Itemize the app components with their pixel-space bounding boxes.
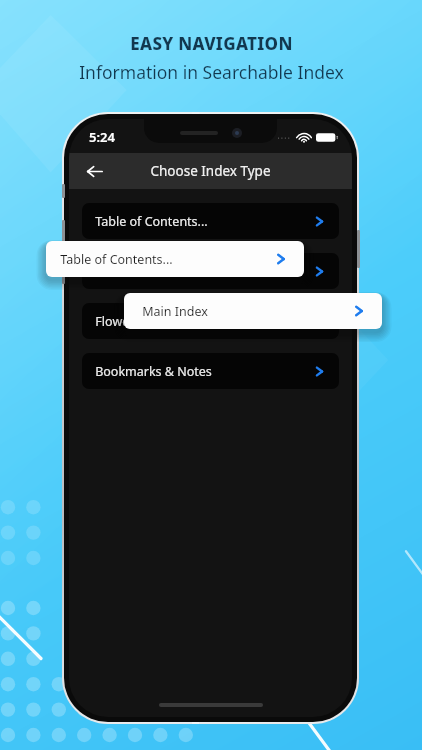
button[interactable]: Bookmarks & Notes <box>82 353 339 389</box>
staticText: Bookmarks & Notes <box>95 363 212 380</box>
staticText: Information in Searchable Index <box>79 60 344 84</box>
button[interactable]: Main Index <box>124 293 382 329</box>
button[interactable]: Flowcharts <box>82 303 339 339</box>
button[interactable]: Back <box>78 155 110 187</box>
staticText: 5:24 <box>89 128 115 146</box>
staticText: Table of Contents... <box>95 213 208 230</box>
staticText: Choose Index Type <box>150 162 271 180</box>
staticText: Table of Contents... <box>60 251 173 268</box>
staticText: Flowcharts <box>95 313 159 330</box>
staticText: Main Index <box>142 303 208 320</box>
button[interactable]: Table of Contents... <box>46 241 304 277</box>
button[interactable] <box>82 253 339 289</box>
staticText: EASY NAVIGATION <box>130 32 293 55</box>
button[interactable]: Table of Contents... <box>82 203 339 239</box>
